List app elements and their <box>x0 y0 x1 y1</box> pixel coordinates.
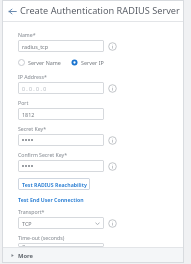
other: Information <box>108 42 117 51</box>
staticText: Test RADIUS Reachability <box>22 181 87 188</box>
button[interactable]: 1812 <box>18 108 104 120</box>
staticText: Secret Key* <box>18 125 46 132</box>
staticText: Confirm Secret Key* <box>18 151 68 158</box>
button[interactable]: 3 <box>18 243 104 247</box>
staticText: 3 <box>22 243 26 247</box>
button[interactable]: TCP <box>18 217 104 229</box>
button[interactable]: Test RADIUS Reachability <box>18 178 90 190</box>
button[interactable]: More <box>2 248 184 263</box>
staticText: Server Name <box>28 59 61 66</box>
button[interactable]: Back <box>6 5 18 17</box>
staticText: Time-out (seconds) <box>18 234 65 241</box>
button[interactable]: Server IP <box>71 58 104 67</box>
staticText: Create Authentication RADIUS Server <box>20 4 180 17</box>
other: Information <box>108 84 117 93</box>
button[interactable]: Server Name <box>18 58 61 67</box>
other: Information <box>108 136 117 145</box>
staticText: 1812 <box>22 111 35 118</box>
staticText: 0 . 0 . 0 . 0 <box>22 85 47 92</box>
other: Information <box>108 219 117 228</box>
staticText: Server IP <box>81 59 104 66</box>
button[interactable]: Test End User Connection <box>18 196 84 203</box>
button[interactable]: radius_tcp <box>18 40 104 52</box>
staticText: TCP <box>22 220 32 227</box>
button[interactable] <box>18 160 104 172</box>
staticText: More <box>18 252 34 260</box>
other: Information <box>108 162 117 171</box>
button[interactable]: 0 . 0 . 0 . 0 <box>18 82 104 94</box>
staticText: IP Address* <box>18 73 47 80</box>
staticText: radius_tcp <box>22 43 49 50</box>
staticText: Name* <box>18 31 36 38</box>
button[interactable] <box>18 134 104 146</box>
staticText: Test End User Connection <box>18 196 84 203</box>
staticText: Port <box>18 99 29 106</box>
staticText: Transport* <box>18 208 45 215</box>
